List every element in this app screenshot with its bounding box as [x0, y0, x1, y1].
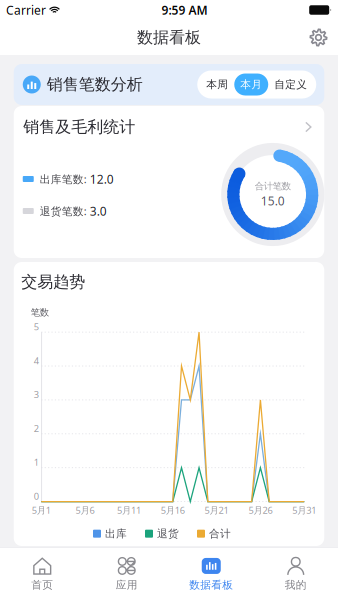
staticText: 出库 — [105, 527, 127, 540]
staticText: 笔数 — [31, 307, 49, 318]
staticText: 9:59 AM — [162, 2, 208, 18]
staticText: 5 — [34, 320, 39, 333]
staticText: 12.0 — [90, 171, 114, 187]
staticText: 3.0 — [90, 203, 107, 219]
staticText: 自定义 — [274, 78, 307, 91]
button[interactable]: 本月 — [234, 73, 268, 95]
staticText: 本月 — [240, 78, 262, 91]
button[interactable]: 数据看板 — [169, 548, 253, 600]
staticText: 首页 — [31, 578, 53, 591]
staticText: 交易趋势 — [21, 272, 85, 292]
button[interactable]: 应用 — [84, 548, 169, 600]
staticText: 应用 — [116, 578, 138, 591]
staticText: 合计 — [209, 527, 231, 540]
staticText: 销售笔数分析 — [47, 75, 143, 94]
button[interactable]: 首页 — [0, 548, 84, 600]
button[interactable]: 设置 — [300, 21, 338, 54]
staticText: 销售及毛利统计 — [23, 117, 135, 137]
staticText: 退货 — [157, 527, 179, 540]
button[interactable]: 本周 — [200, 73, 234, 95]
staticText: 1 — [34, 456, 39, 468]
staticText: Carrier — [6, 2, 46, 18]
staticText: 数据看板 — [189, 578, 233, 591]
staticText: 3 — [34, 388, 39, 401]
button[interactable]: 自定义 — [268, 73, 313, 95]
staticText: 退货笔数: — [40, 204, 90, 218]
button[interactable]: 我的 — [253, 548, 338, 600]
staticText: 5月11 — [117, 504, 141, 516]
staticText: 数据看板 — [137, 28, 201, 47]
staticText: 本周 — [206, 78, 228, 91]
staticText: 2 — [34, 422, 39, 434]
button[interactable]: 销售及毛利统计 — [14, 106, 324, 148]
staticText: 5月6 — [76, 504, 95, 516]
staticText: 5月1 — [32, 504, 51, 516]
staticText: 合计笔数 — [255, 180, 291, 192]
staticText: 出库笔数: — [40, 172, 90, 186]
staticText: 5月26 — [248, 504, 272, 516]
staticText: 我的 — [285, 578, 307, 591]
staticText: 5月21 — [205, 504, 229, 516]
staticText: 4 — [34, 354, 39, 367]
staticText: 5月31 — [292, 504, 316, 516]
staticText: 15.0 — [261, 193, 285, 209]
staticText: 5月16 — [161, 504, 185, 516]
staticText: 0 — [34, 490, 39, 502]
